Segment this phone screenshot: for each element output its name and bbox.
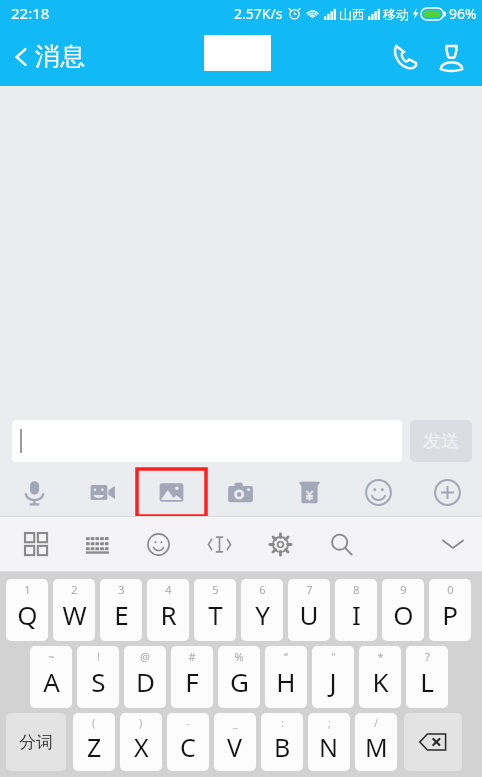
staticText: 发送 — [423, 430, 459, 453]
staticText: * — [377, 649, 384, 664]
button[interactable]: Emoji — [344, 469, 413, 516]
staticText: 7 — [306, 582, 313, 597]
button[interactable]: 2 — [53, 579, 95, 641]
staticText: ( — [92, 715, 96, 730]
staticText: Q — [17, 597, 38, 632]
staticText: / — [374, 715, 379, 730]
button[interactable]: 1 — [6, 579, 48, 641]
staticText: O — [393, 597, 414, 632]
button[interactable]: % — [218, 646, 260, 708]
button[interactable]: " — [312, 646, 354, 708]
button[interactable]: : — [261, 713, 303, 771]
staticText: 22:18 — [11, 3, 50, 23]
button[interactable]: - — [167, 713, 209, 771]
button[interactable]: 3 — [100, 579, 142, 641]
button[interactable]: Photo — [137, 469, 206, 516]
button[interactable]: Video chat — [68, 469, 137, 516]
staticText: 8 — [353, 582, 360, 597]
staticText: " — [331, 649, 336, 664]
button[interactable]: ! — [77, 646, 119, 708]
button[interactable]: Clipboard — [189, 517, 250, 571]
staticText: E — [114, 597, 129, 632]
button[interactable]: 消息 — [0, 33, 97, 80]
staticText: C — [180, 730, 196, 764]
staticText: I — [352, 597, 361, 632]
staticText: W — [62, 597, 87, 632]
staticText: Z — [87, 730, 102, 764]
staticText: A — [43, 664, 60, 699]
staticText: ) — [139, 715, 143, 730]
button[interactable]: # — [171, 646, 213, 708]
button[interactable]: Keyboard layout — [67, 517, 128, 571]
button[interactable]: Backspace — [404, 713, 462, 771]
button[interactable]: ~ — [30, 646, 72, 708]
staticText: 96% — [449, 4, 477, 23]
staticText: D — [136, 664, 155, 699]
staticText: 0 — [447, 582, 454, 597]
button[interactable]: Camera — [206, 469, 275, 516]
button[interactable]: Contact profile — [428, 33, 474, 79]
staticText: P — [442, 597, 458, 632]
staticText: H — [276, 664, 296, 699]
staticText: “ — [284, 649, 288, 664]
button[interactable]: 6 — [241, 579, 283, 641]
button[interactable]: 8 — [335, 579, 377, 641]
staticText: 5 — [212, 582, 219, 597]
staticText: 9 — [400, 582, 407, 597]
button[interactable]: 9 — [382, 579, 424, 641]
button[interactable]: 0 — [429, 579, 471, 641]
staticText: 消息 — [35, 41, 85, 72]
button[interactable]: ( — [73, 713, 115, 771]
button[interactable]: Red packet — [275, 469, 344, 516]
staticText: 6 — [259, 582, 266, 597]
button[interactable]: 分词 — [6, 713, 66, 771]
button[interactable]: 4 — [147, 579, 189, 641]
staticText: X — [134, 730, 149, 764]
button[interactable]: Call — [382, 33, 428, 79]
staticText: 移动 — [383, 6, 409, 22]
button[interactable]: ? — [406, 646, 448, 708]
staticText: S — [91, 664, 106, 699]
button[interactable]: Emoji — [128, 517, 189, 571]
staticText: U — [299, 597, 319, 632]
staticText: R — [160, 597, 177, 632]
staticText: 4 — [165, 582, 172, 597]
staticText: ? — [425, 649, 430, 664]
staticText: K — [372, 664, 389, 699]
staticText: # — [188, 649, 196, 664]
button[interactable]: 5 — [194, 579, 236, 641]
staticText: ~ — [48, 649, 55, 664]
staticText: V — [227, 730, 243, 764]
staticText: M — [365, 730, 388, 764]
staticText: 2 — [71, 582, 78, 597]
button[interactable]: Hide keyboard — [424, 517, 482, 571]
button[interactable]: “ — [265, 646, 307, 708]
staticText: Y — [255, 597, 270, 632]
button[interactable]: / — [355, 713, 397, 771]
staticText: : — [281, 715, 284, 730]
staticText: F — [185, 664, 199, 699]
staticText: J — [329, 664, 337, 699]
button[interactable]: Voice message — [0, 469, 68, 516]
button[interactable]: Apps — [6, 517, 67, 571]
button[interactable]: More — [413, 469, 482, 516]
button[interactable]: Settings — [250, 517, 311, 571]
button[interactable]: @ — [124, 646, 166, 708]
button[interactable]: Search — [311, 517, 372, 571]
button[interactable]: 7 — [288, 579, 330, 641]
button[interactable] — [12, 420, 402, 462]
button[interactable]: ) — [120, 713, 162, 771]
staticText: 3 — [118, 582, 125, 597]
staticText: ; — [328, 715, 331, 730]
button[interactable]: * — [359, 646, 401, 708]
staticText: G — [230, 664, 249, 699]
staticText: 分词 — [19, 732, 53, 753]
staticText: B — [274, 730, 291, 764]
button[interactable]: 发送 — [410, 420, 472, 462]
button[interactable]: _ — [214, 713, 256, 771]
button[interactable]: ; — [308, 713, 350, 771]
staticText: 2.57K/s — [234, 4, 283, 23]
staticText: ! — [97, 649, 100, 664]
staticText: % — [234, 649, 244, 664]
staticText: 1 — [24, 582, 31, 597]
